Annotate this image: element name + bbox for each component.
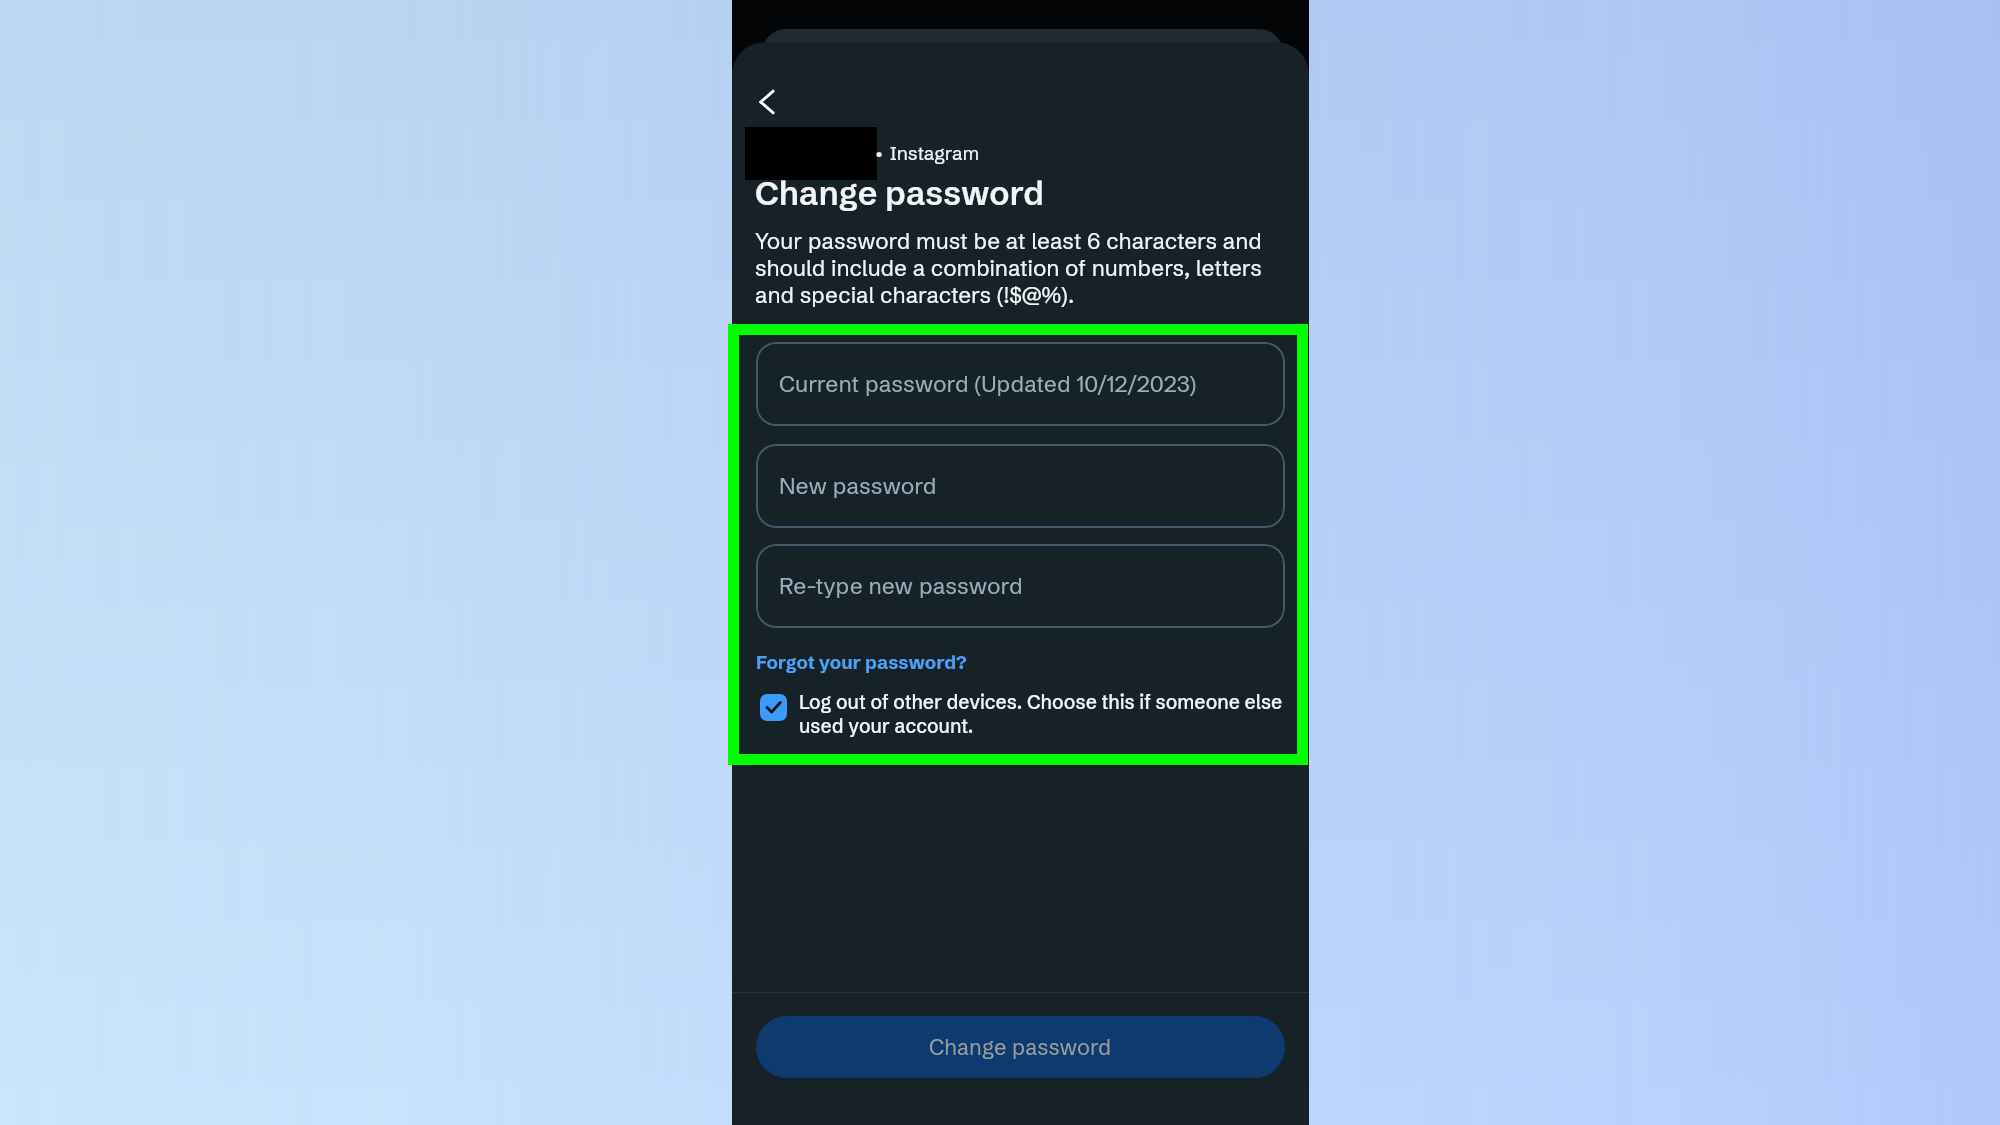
staticText: Current password (Updated 10/12/2023): [779, 370, 1197, 398]
button[interactable]: New password: [756, 444, 1285, 528]
button[interactable]: Log out of other devices. Choose this if…: [756, 690, 1285, 738]
staticText: Log out of other devices. Choose this if…: [799, 690, 1283, 738]
staticText: Your password must be at least 6 charact…: [755, 227, 1262, 308]
button[interactable]: Re-type new password: [756, 544, 1285, 628]
staticText: Change password: [755, 172, 1044, 214]
staticText: Re-type new password: [779, 572, 1023, 600]
button[interactable]: Forgot your password?: [756, 648, 967, 674]
button[interactable]: Change password: [756, 1016, 1285, 1078]
staticText: Change password: [929, 1034, 1112, 1061]
staticText: • Instagram: [873, 139, 980, 165]
button[interactable]: Back: [746, 80, 790, 124]
staticText: New password: [779, 472, 937, 500]
button[interactable]: Current password (Updated 10/12/2023): [756, 342, 1285, 426]
